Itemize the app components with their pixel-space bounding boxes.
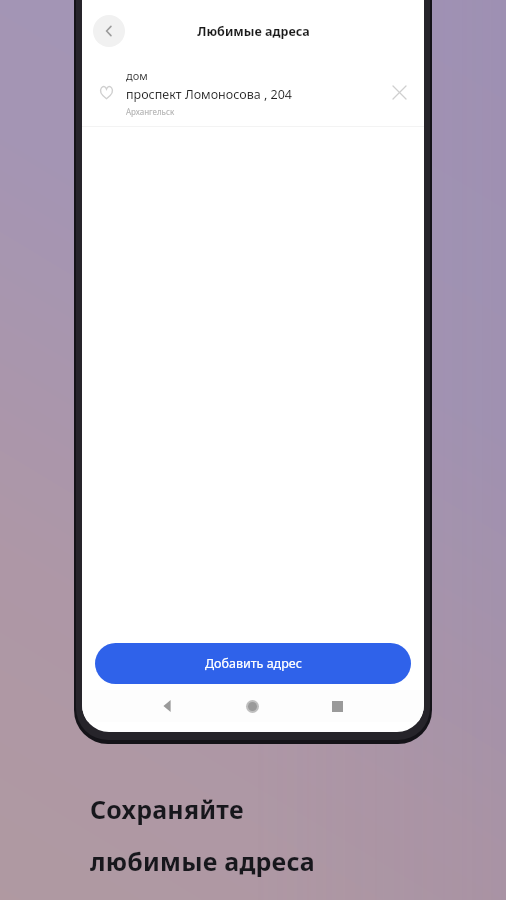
staticText: проспект Ломоносова , 204: [126, 86, 292, 103]
button[interactable]: Back: [126, 700, 210, 712]
button[interactable]: дом: [82, 58, 424, 126]
button[interactable]: Добавить адрес: [95, 643, 411, 684]
staticText: Сохраняйте: [90, 792, 244, 826]
staticText: Любимые адреса: [197, 23, 310, 40]
button[interactable]: Удалить: [385, 78, 413, 106]
button[interactable]: Назад: [93, 15, 125, 47]
staticText: Добавить адрес: [205, 655, 302, 672]
staticText: дом: [126, 68, 148, 83]
staticText: любимые адреса: [90, 844, 315, 878]
staticText: Архангельск: [126, 106, 175, 117]
button[interactable]: Home: [210, 700, 295, 713]
button[interactable]: Recents: [295, 701, 380, 712]
